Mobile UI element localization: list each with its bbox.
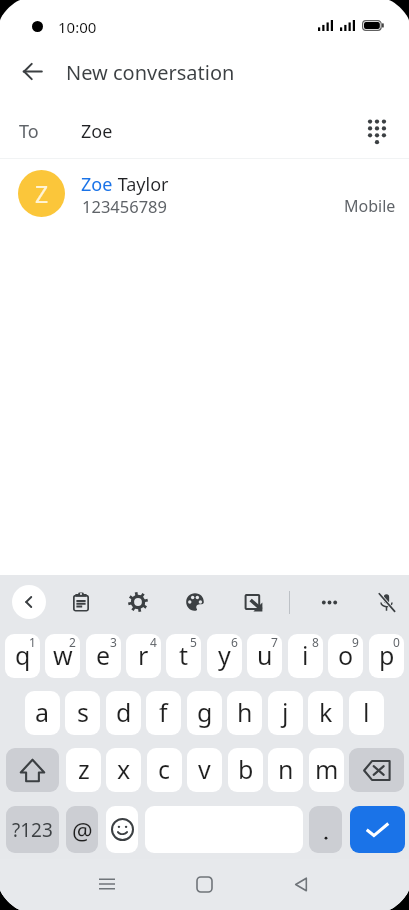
button[interactable]: Shift <box>6 748 59 792</box>
button[interactable]: b <box>228 748 263 792</box>
button[interactable]: v <box>187 748 222 792</box>
staticText: @ <box>72 815 93 846</box>
staticText: Z <box>35 178 49 209</box>
staticText: f <box>159 695 168 729</box>
button[interactable]: n <box>268 748 303 792</box>
staticText: 0 <box>393 634 400 650</box>
button[interactable]: f <box>146 691 181 735</box>
button[interactable]: g <box>187 691 222 735</box>
staticText: 10:00 <box>58 17 97 37</box>
staticText: i <box>302 638 309 672</box>
button[interactable]: j <box>268 691 303 735</box>
staticText: b <box>238 752 254 786</box>
staticText: q <box>15 638 31 672</box>
button[interactable]: q <box>5 634 40 678</box>
staticText: p <box>379 638 395 672</box>
staticText: 7 <box>271 634 278 650</box>
button[interactable]: Period <box>309 806 342 853</box>
staticText: o <box>338 638 354 672</box>
staticText: h <box>237 695 253 729</box>
button[interactable]: Recents <box>83 860 131 908</box>
staticText: 123456789 <box>82 195 167 217</box>
button[interactable]: @ <box>66 806 98 853</box>
button[interactable]: w <box>45 634 80 678</box>
button[interactable]: Mute microphone <box>367 583 405 621</box>
staticText: 8 <box>312 634 319 650</box>
button[interactable]: Theme <box>176 583 214 621</box>
button[interactable]: m <box>309 748 344 792</box>
button[interactable]: c <box>147 748 182 792</box>
button[interactable]: Resize keyboard <box>234 583 272 621</box>
staticText: r <box>138 638 149 672</box>
button[interactable]: i <box>288 634 323 678</box>
button[interactable]: l <box>349 691 384 735</box>
staticText: a <box>35 695 50 729</box>
staticText: New conversation <box>66 59 235 86</box>
staticText: 5 <box>190 634 197 650</box>
button[interactable]: Backspace <box>349 748 404 792</box>
button[interactable]: x <box>106 748 141 792</box>
button[interactable]: Back <box>277 860 325 908</box>
button[interactable]: Emoji <box>106 806 138 853</box>
staticText: w <box>53 638 73 672</box>
button[interactable]: More options <box>310 583 348 621</box>
staticText: z <box>78 752 90 786</box>
staticText: Mobile <box>344 195 396 217</box>
button[interactable]: o <box>328 634 363 678</box>
staticText: e <box>96 638 111 672</box>
staticText: n <box>278 752 294 786</box>
staticText: g <box>197 695 213 729</box>
staticText: 9 <box>352 634 359 650</box>
staticText: Zoe <box>81 172 113 197</box>
staticText: u <box>257 638 273 672</box>
button[interactable]: z <box>66 748 101 792</box>
button[interactable]: ?123 <box>6 806 59 853</box>
button[interactable]: Send <box>350 806 405 853</box>
button[interactable]: t <box>166 634 201 678</box>
button[interactable]: Home <box>180 860 228 908</box>
staticText: s <box>77 695 89 729</box>
staticText: m <box>315 752 339 786</box>
button[interactable]: e <box>86 634 121 678</box>
staticText: l <box>363 695 370 729</box>
staticText: 6 <box>231 634 238 650</box>
staticText: v <box>198 752 211 786</box>
button[interactable]: h <box>227 691 262 735</box>
staticText: j <box>282 695 289 729</box>
button[interactable]: Clipboard <box>62 583 100 621</box>
staticText: d <box>116 695 132 729</box>
button[interactable]: d <box>106 691 141 735</box>
staticText: Taylor <box>113 172 169 197</box>
button[interactable]: k <box>308 691 343 735</box>
button[interactable]: Back <box>8 47 56 95</box>
button[interactable]: Settings <box>119 583 157 621</box>
staticText: y <box>218 638 231 672</box>
button[interactable]: Back <box>12 585 46 619</box>
button[interactable]: a <box>25 691 60 735</box>
button[interactable]: p <box>369 634 404 678</box>
staticText: 1 <box>29 634 36 650</box>
button[interactable]: u <box>247 634 282 678</box>
staticText: 3 <box>110 634 117 650</box>
button[interactable]: Z <box>0 160 409 228</box>
staticText: t <box>179 638 189 672</box>
button[interactable]: Dialpad <box>355 109 399 153</box>
staticText: k <box>319 695 333 729</box>
staticText: 4 <box>150 634 157 650</box>
staticText: x <box>117 752 131 786</box>
staticText: To <box>19 119 39 144</box>
button[interactable]: r <box>126 634 161 678</box>
staticText: ?123 <box>12 817 53 843</box>
staticText: Zoe <box>81 119 113 144</box>
staticText: c <box>158 752 171 786</box>
button[interactable]: y <box>207 634 242 678</box>
button[interactable]: s <box>65 691 100 735</box>
staticText: 2 <box>69 634 76 650</box>
